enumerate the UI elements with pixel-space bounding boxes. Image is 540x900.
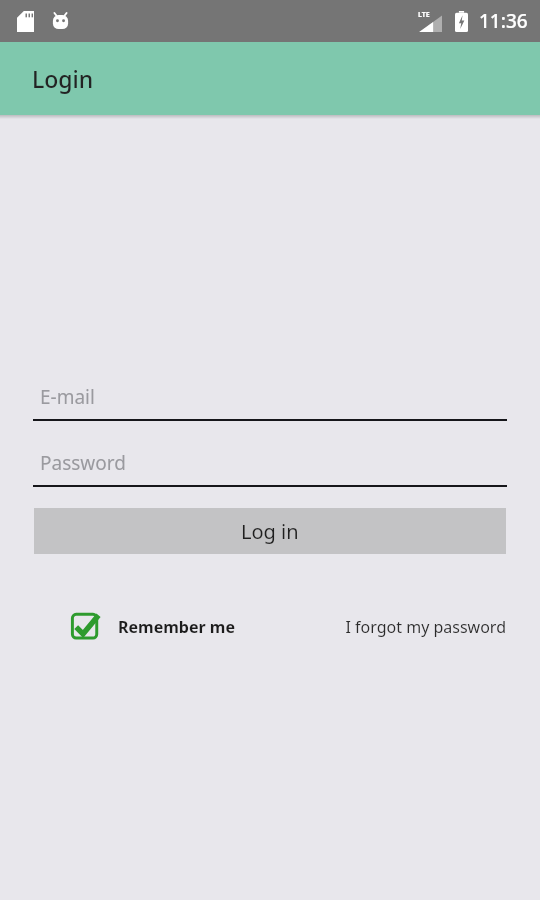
staticText: Log in — [241, 518, 299, 545]
other: Remember me checkbox, checked — [70, 611, 101, 642]
staticText: Remember me — [118, 616, 235, 638]
button[interactable]: I forgot my password — [345, 616, 506, 638]
button[interactable]: Remember me checkbox, checked — [70, 611, 235, 642]
staticText: Login — [32, 63, 94, 94]
button[interactable]: Password — [33, 441, 507, 487]
staticText: LTE — [418, 10, 430, 20]
staticText: E-mail — [40, 384, 95, 410]
button[interactable]: E-mail — [33, 375, 507, 421]
staticText: Password — [40, 450, 126, 476]
button[interactable]: Log in — [34, 508, 506, 554]
staticText: I forgot my password — [345, 616, 506, 638]
staticText: 11:36 — [479, 8, 528, 34]
